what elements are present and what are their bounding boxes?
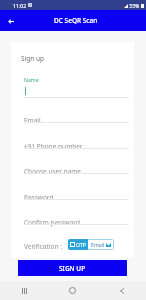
staticText: Choose user name (24, 167, 82, 176)
staticText: DC SeQR Scan (54, 16, 98, 25)
staticText: Password (24, 193, 54, 202)
staticText: Verification : (24, 242, 62, 251)
staticText: Email (91, 241, 105, 248)
button[interactable]: Back (4, 14, 18, 28)
staticText: 33% (129, 2, 140, 9)
button[interactable]: Back (97, 281, 146, 300)
staticText: +91 Phone number (24, 142, 83, 151)
button[interactable] (24, 136, 129, 150)
staticText: OTP (76, 241, 86, 248)
button[interactable]: Home (48, 281, 97, 300)
staticText: Confirm password (24, 218, 80, 227)
staticText: Email (24, 116, 41, 125)
staticText: Name (24, 76, 39, 83)
button[interactable] (24, 161, 129, 175)
staticText: 11:02 (13, 2, 27, 9)
staticText: SIGN UP (59, 264, 86, 273)
button[interactable]: Recents (0, 281, 48, 300)
button[interactable] (24, 110, 129, 124)
button[interactable]: OTP (70, 239, 86, 250)
button[interactable]: Email (91, 239, 111, 250)
button[interactable] (24, 212, 129, 226)
staticText: Sign up (21, 54, 44, 63)
button[interactable]: SIGN UP (18, 260, 127, 276)
button[interactable] (24, 187, 129, 201)
